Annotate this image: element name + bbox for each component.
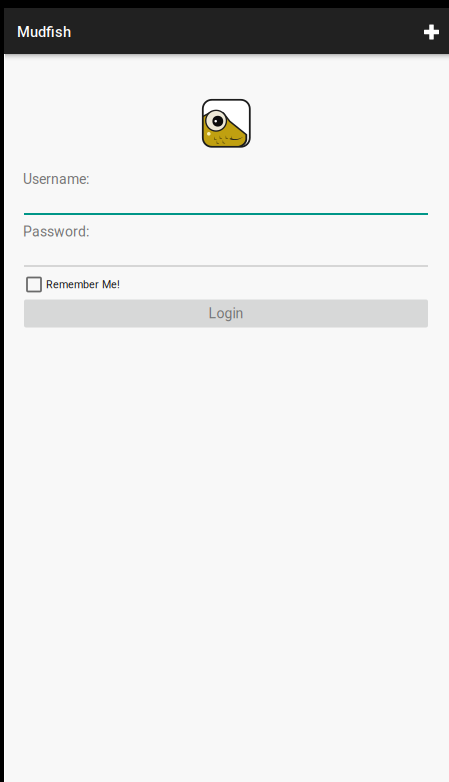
staticText: Password: (23, 223, 89, 240)
staticText: Mudfish (17, 23, 71, 41)
staticText: Username: (23, 171, 89, 187)
button[interactable]: Login (24, 299, 428, 327)
staticText: Remember Me! (46, 278, 120, 291)
staticText: Login (208, 305, 243, 322)
button[interactable]: Remember Me! (24, 273, 428, 295)
button[interactable]: Add (415, 16, 447, 48)
button[interactable]: Password: (24, 225, 428, 269)
button[interactable]: Username: (24, 172, 428, 216)
